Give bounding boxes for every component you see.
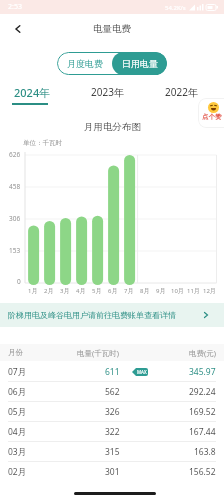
staticText: 点个赞 — [202, 113, 222, 121]
staticText: 301 — [105, 466, 120, 478]
staticText: 电量电费 — [93, 23, 131, 35]
staticText: 2:53 — [8, 2, 22, 12]
staticText: 0 — [17, 277, 21, 286]
staticText: 月度电费 — [67, 58, 103, 69]
staticText: 月用电分布图 — [84, 121, 141, 133]
staticText: 292.24 — [189, 386, 216, 398]
staticText: 326 — [105, 406, 120, 418]
button[interactable]: 日用电量 — [112, 52, 167, 75]
button[interactable] — [14, 25, 22, 33]
button[interactable]: 07月 — [0, 362, 224, 382]
staticText: 8月 — [140, 287, 150, 295]
button[interactable]: 点个赞 — [198, 98, 224, 128]
staticText: 单位：千瓦时 — [23, 139, 62, 147]
staticText: 04月 — [8, 426, 27, 438]
button[interactable]: 04月 — [0, 422, 224, 442]
staticText: 306 — [9, 214, 21, 223]
staticText: 5月 — [92, 287, 102, 295]
staticText: 345.97 — [189, 366, 216, 378]
button[interactable]: 03月 — [0, 442, 224, 462]
button[interactable]: 月度电费 — [57, 52, 112, 75]
staticText: 156.52 — [189, 466, 216, 478]
staticText: 163.8 — [194, 446, 216, 458]
staticText: 6月 — [108, 287, 118, 295]
staticText: 611 — [105, 366, 120, 378]
staticText: 54.2K/s — [165, 4, 186, 12]
staticText: 2023年 — [91, 85, 124, 99]
button[interactable]: 05月 — [0, 402, 224, 422]
staticText: 电量(千瓦时) — [77, 348, 119, 358]
button[interactable]: 2024年 — [6, 83, 58, 101]
button[interactable]: 2023年 — [81, 83, 133, 101]
staticText: 2月 — [44, 287, 54, 295]
staticText: MAX — [137, 369, 147, 375]
staticText: 12月 — [203, 287, 216, 295]
staticText: 日用电量 — [122, 58, 158, 69]
staticText: 169.52 — [189, 406, 216, 418]
staticText: 153 — [9, 246, 21, 255]
button[interactable]: 02月 — [0, 462, 224, 482]
button[interactable]: 06月 — [0, 382, 224, 402]
staticText: 10月 — [171, 287, 184, 295]
staticText: 11月 — [187, 287, 200, 295]
staticText: 月份 — [8, 348, 23, 357]
staticText: 626 — [9, 150, 21, 159]
staticText: 562 — [105, 386, 120, 398]
staticText: 05月 — [8, 406, 27, 418]
staticText: 07月 — [8, 366, 27, 378]
staticText: 322 — [105, 426, 120, 438]
staticText: 阶梯用电及峰谷电用户请前往电费账单查看详情 — [8, 310, 176, 320]
button[interactable]: 2022年 — [155, 83, 207, 101]
staticText: 3月 — [60, 287, 70, 295]
staticText: 电费(元) — [189, 348, 216, 358]
staticText: 167.44 — [189, 426, 216, 438]
staticText: 7月 — [124, 287, 134, 295]
staticText: 06月 — [8, 386, 27, 398]
staticText: 03月 — [8, 446, 27, 458]
staticText: 2024年 — [14, 85, 51, 100]
staticText: 458 — [9, 182, 21, 191]
staticText: 9月 — [156, 287, 166, 295]
staticText: 315 — [105, 446, 120, 458]
staticText: 1月 — [28, 287, 38, 295]
staticText: 4月 — [76, 287, 86, 295]
button[interactable]: 阶梯用电及峰谷电用户请前往电费账单查看详情 — [0, 303, 224, 327]
staticText: 02月 — [8, 466, 27, 478]
staticText: 2022年 — [165, 85, 198, 99]
